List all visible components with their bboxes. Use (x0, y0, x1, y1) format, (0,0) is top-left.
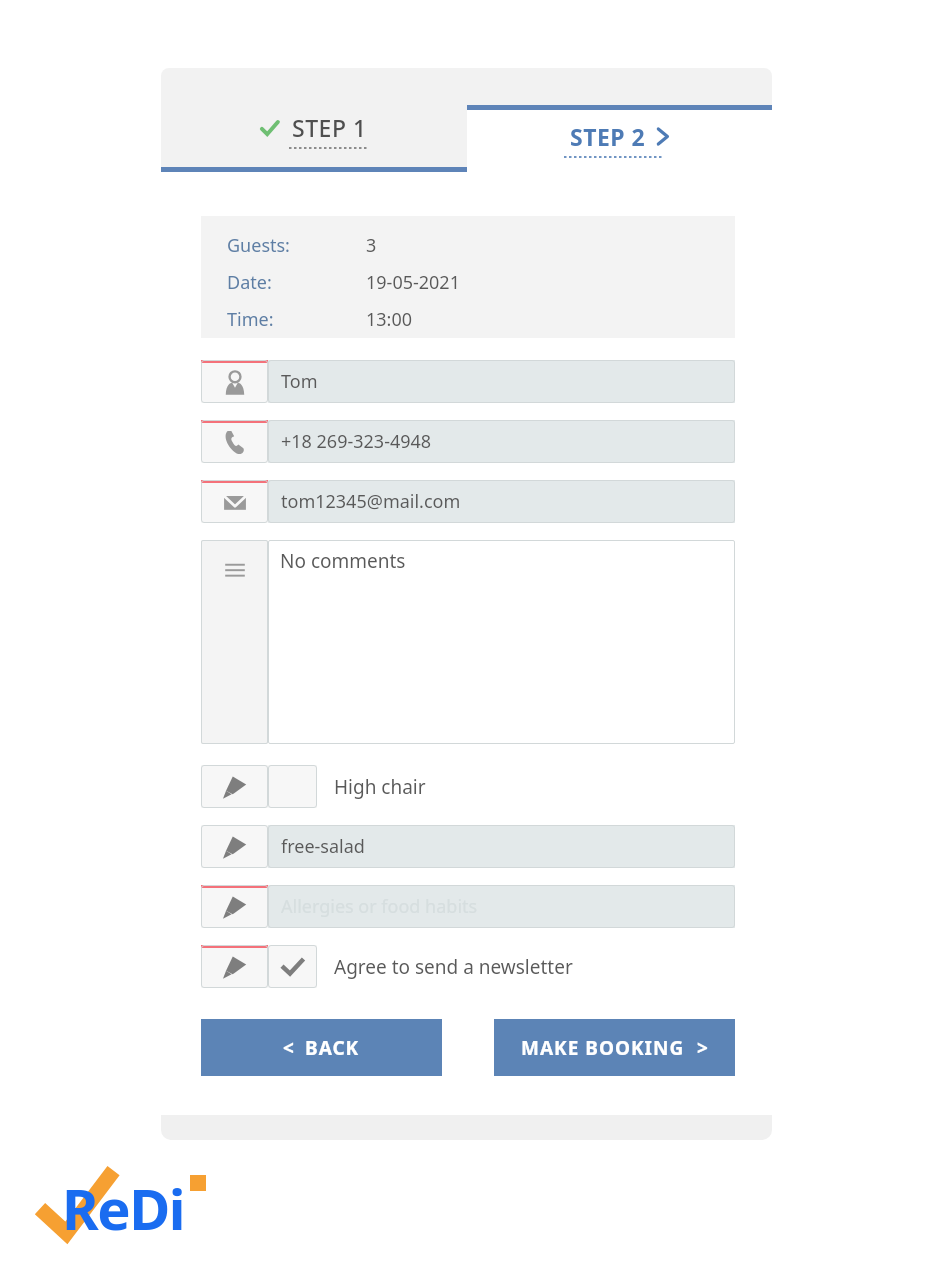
staticText: Time: (227, 307, 274, 332)
staticText: Guests: (227, 233, 290, 258)
staticText: Agree to send a newsletter (334, 954, 573, 980)
button[interactable]: pencil (201, 945, 735, 988)
staticText: free-salad (281, 834, 365, 859)
staticText: tom12345@mail.com (281, 489, 461, 514)
button[interactable]: STEP 1 (161, 68, 467, 172)
button[interactable]: < (201, 1019, 442, 1076)
staticText: > (697, 1035, 708, 1061)
button[interactable]: mail (201, 480, 735, 523)
button[interactable]: phone (201, 420, 735, 463)
button[interactable]: pencil (201, 765, 735, 808)
staticText: No comments (280, 548, 406, 574)
button[interactable]: pencil (201, 825, 735, 868)
staticText: +18 269-323-4948 (281, 429, 432, 454)
staticText: < (283, 1035, 294, 1061)
other: pencil (201, 765, 268, 808)
staticText: STEP 2 (570, 121, 646, 152)
button[interactable]: STEP 2 (467, 105, 772, 172)
staticText: 3 (366, 233, 377, 258)
other: person (201, 360, 268, 403)
staticText: Tom (281, 369, 318, 394)
staticText: Date: (227, 270, 272, 295)
staticText: 19-05-2021 (366, 270, 460, 295)
staticText: Allergies or food habits (281, 894, 478, 919)
other: mail (201, 480, 268, 523)
staticText: ReDi (62, 1170, 184, 1246)
other: phone (201, 420, 268, 463)
other: comments (201, 540, 268, 744)
other: pencil (201, 885, 268, 928)
other: ReDi logo (36, 1166, 246, 1242)
staticText: MAKE BOOKING (521, 1035, 685, 1061)
staticText: 13:00 (366, 307, 413, 332)
button[interactable]: person (201, 360, 735, 403)
staticText: BACK (305, 1035, 360, 1061)
staticText: High chair (334, 774, 426, 800)
button[interactable]: MAKE BOOKING (494, 1019, 735, 1076)
button[interactable]: comments (201, 540, 735, 744)
button[interactable]: pencil (201, 885, 735, 928)
other: pencil (201, 825, 268, 868)
other: pencil (201, 945, 268, 988)
staticText: STEP 1 (292, 112, 367, 143)
